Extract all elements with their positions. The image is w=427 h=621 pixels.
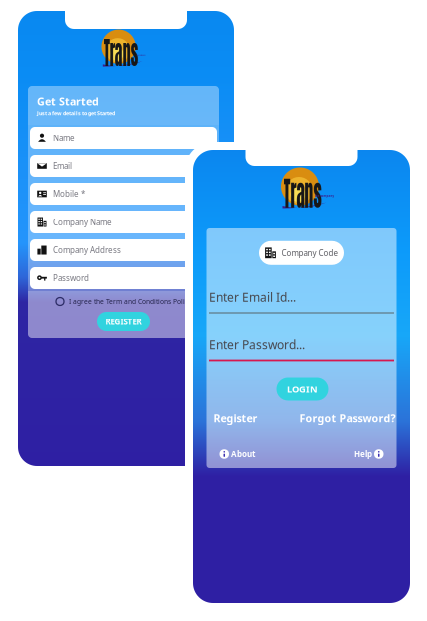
staticText: Name [53, 133, 75, 143]
button[interactable]: Forgot Password? [299, 411, 395, 425]
staticText: About [231, 449, 255, 459]
button[interactable]: REGISTER [97, 312, 150, 331]
staticText: Just a few details to get Started [37, 109, 115, 117]
button[interactable]: I agree the Term and Conditions Policy [56, 291, 191, 312]
staticText: Email [53, 161, 72, 171]
staticText: Forgot Password? [299, 411, 395, 425]
button[interactable]: About [219, 449, 255, 459]
staticText: LOGIN [287, 383, 318, 395]
staticText: Company Name [53, 217, 112, 227]
staticText: Trans [283, 180, 321, 207]
button[interactable]: Register [213, 411, 257, 425]
button[interactable]: Email [30, 155, 217, 177]
staticText: Trans [104, 41, 138, 65]
staticText: Company Code [281, 247, 338, 258]
staticText: the company [314, 194, 334, 198]
staticText: Enter Email Id... [209, 289, 296, 305]
staticText: Get Started [37, 94, 99, 109]
button[interactable]: Mobile * [30, 183, 217, 205]
staticText: the company [136, 54, 146, 56]
staticText: REGISTER [105, 316, 141, 327]
staticText: Password [53, 273, 89, 283]
button[interactable]: Name [30, 127, 217, 149]
staticText: Help [354, 449, 372, 459]
button[interactable]: Company Code [259, 241, 344, 265]
button[interactable]: LOGIN [276, 377, 328, 400]
button[interactable]: Password [30, 267, 217, 289]
staticText: I agree the Term and Conditions Policy [69, 297, 191, 306]
button[interactable]: Help [354, 449, 383, 459]
staticText: Enter Password... [209, 336, 305, 352]
button[interactable]: Company Name [30, 211, 217, 233]
button[interactable]: Company Address [30, 239, 217, 261]
staticText: Company Address [53, 245, 121, 255]
staticText: Mobile * [53, 189, 85, 199]
staticText: Register [213, 411, 257, 425]
